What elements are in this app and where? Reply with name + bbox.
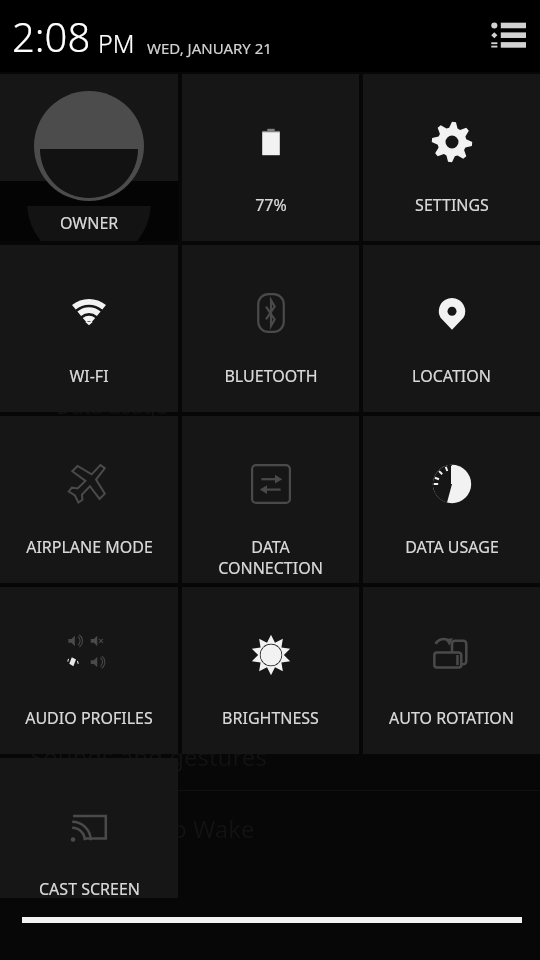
button[interactable]: DATA USAGE [363,416,540,583]
staticText: CAST SCREEN [39,878,140,898]
button[interactable]: LOCATION [363,245,540,412]
button[interactable]: CAST SCREEN [0,758,178,898]
button[interactable]: WI-FI [0,245,178,412]
staticText: DATA USAGE [405,536,499,558]
button[interactable]: AUTO ROTATION [363,587,540,754]
staticText: Double Tap to Wake [30,812,255,845]
staticText: 77% [255,194,287,216]
button[interactable]: 77% [182,74,359,241]
staticText: Data usage [56,392,168,421]
staticText: Sounds and gestures [30,740,267,773]
button[interactable]: SETTINGS [363,74,540,241]
staticText: 2:08 [12,9,91,63]
staticText: AUTO ROTATION [389,707,514,729]
staticText: WI-FI [69,365,109,387]
staticText: BRIGHTNESS [222,707,319,729]
staticText: LOCATION [412,365,491,387]
staticText: BLUETOOTH [224,365,318,387]
staticText: PM [98,26,135,60]
button[interactable]: OWNER [0,74,178,241]
staticText: SETTINGS [415,194,489,216]
staticText: AUDIO PROFILES [25,707,153,729]
button[interactable]: AIRPLANE MODE [0,416,178,583]
staticText: DATA CONNECTION [218,536,323,579]
button[interactable]: BRIGHTNESS [182,587,359,754]
staticText: AIRPLANE MODE [26,536,153,558]
button[interactable]: AUDIO PROFILES [0,587,178,754]
staticText: WED, JANUARY 21 [147,38,272,58]
button[interactable]: BLUETOOTH [182,245,359,412]
button[interactable]: Notifications list [486,14,530,58]
staticText: OWNER [60,212,119,234]
button[interactable]: DATA CONNECTION [182,416,359,583]
